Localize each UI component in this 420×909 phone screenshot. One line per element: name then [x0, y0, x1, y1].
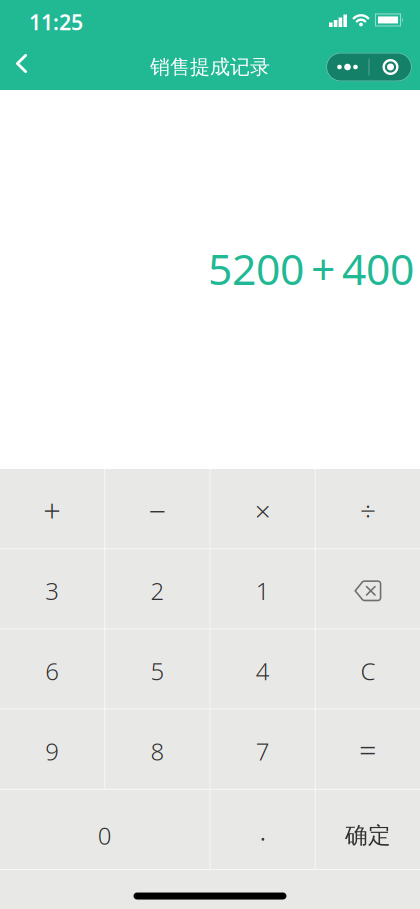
button[interactable]: = — [316, 710, 420, 789]
staticText: 11:25 — [29, 8, 83, 36]
staticText: 8 — [150, 735, 164, 767]
button[interactable]: Back — [0, 44, 44, 90]
button[interactable]: Delete — [316, 549, 420, 628]
button[interactable]: Close — [369, 52, 412, 81]
button[interactable]: 6 — [0, 629, 104, 709]
staticText: 7 — [256, 735, 270, 767]
button[interactable]: ÷ — [316, 469, 420, 548]
staticText: 确定 — [345, 821, 391, 849]
button[interactable]: 确定 — [316, 790, 420, 869]
staticText: 5200 + 400 — [208, 240, 414, 297]
button[interactable]: × — [210, 469, 315, 548]
staticText: C — [360, 655, 375, 687]
button[interactable]: 3 — [0, 549, 104, 628]
staticText: 6 — [45, 655, 59, 687]
button[interactable]: − — [105, 469, 209, 548]
staticText: 3 — [45, 575, 59, 607]
staticText: 1 — [256, 575, 270, 607]
button[interactable]: 0 — [0, 790, 209, 869]
staticText: × — [255, 492, 271, 529]
button[interactable]: . — [210, 790, 315, 869]
staticText: 销售提成记录 — [150, 55, 270, 79]
staticText: . — [259, 810, 266, 849]
staticText: − — [148, 490, 166, 531]
staticText: 9 — [45, 735, 59, 767]
staticText: 2 — [150, 575, 164, 607]
button[interactable]: More — [326, 52, 369, 81]
button[interactable]: C — [316, 629, 420, 709]
button[interactable]: 8 — [105, 710, 209, 789]
button[interactable]: + — [0, 469, 104, 548]
staticText: = — [359, 729, 377, 769]
staticText: 5 — [150, 655, 164, 687]
button[interactable]: 4 — [210, 629, 315, 709]
button[interactable]: 1 — [210, 549, 315, 628]
staticText: ÷ — [360, 492, 376, 529]
staticText: 4 — [256, 655, 270, 687]
staticText: 0 — [98, 819, 112, 851]
button[interactable]: 7 — [210, 710, 315, 789]
button[interactable]: 9 — [0, 710, 104, 789]
button[interactable]: 5 — [105, 629, 209, 709]
button[interactable]: 2 — [105, 549, 209, 628]
staticText: + — [43, 490, 61, 531]
